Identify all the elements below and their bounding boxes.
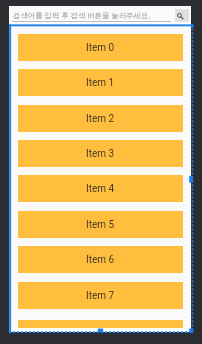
staticText: Item 1 (86, 77, 115, 89)
staticText: Item 2 (86, 113, 115, 125)
staticText: Item 3 (86, 148, 115, 160)
button[interactable]: Item 6 (18, 246, 183, 273)
button[interactable]: Item 0 (18, 34, 183, 61)
button[interactable]: Item 1 (18, 69, 183, 96)
staticText: Item 7 (86, 290, 115, 302)
button[interactable]: Item 7 (18, 282, 183, 309)
button[interactable]: Search (175, 9, 189, 22)
button[interactable]: Item 2 (18, 105, 183, 132)
staticText: Item 0 (86, 42, 115, 54)
button[interactable]: Item 4 (18, 175, 183, 202)
staticText: Item 6 (86, 254, 115, 266)
button[interactable]: Item 3 (18, 140, 183, 167)
staticText: 검색어를 입력 후 검색 버튼을 눌러주세요. (13, 10, 151, 20)
staticText: Item 5 (86, 219, 115, 231)
button[interactable]: Item 5 (18, 211, 183, 238)
staticText: Item 4 (86, 183, 115, 195)
